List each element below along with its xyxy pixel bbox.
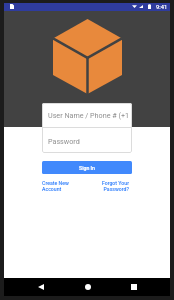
staticText: Sign In xyxy=(79,165,95,171)
button[interactable]: Create New Account xyxy=(42,180,87,192)
button[interactable]: Password xyxy=(42,128,132,153)
button[interactable]: Sign In xyxy=(42,161,132,174)
button[interactable]: Home xyxy=(81,280,94,293)
button[interactable]: Back xyxy=(34,280,47,293)
staticText: Password xyxy=(48,137,80,145)
staticText: 9:41 xyxy=(156,4,168,11)
staticText: User Name / Phone # (+1 xyxy=(48,111,130,119)
button[interactable]: User Name / Phone # (+1 xyxy=(42,103,132,127)
button[interactable]: Recent apps xyxy=(127,280,140,293)
staticText: Create New Account xyxy=(42,180,69,192)
button[interactable]: Forgot Your Password? xyxy=(87,180,132,192)
staticText: Forgot Your Password? xyxy=(87,180,129,192)
